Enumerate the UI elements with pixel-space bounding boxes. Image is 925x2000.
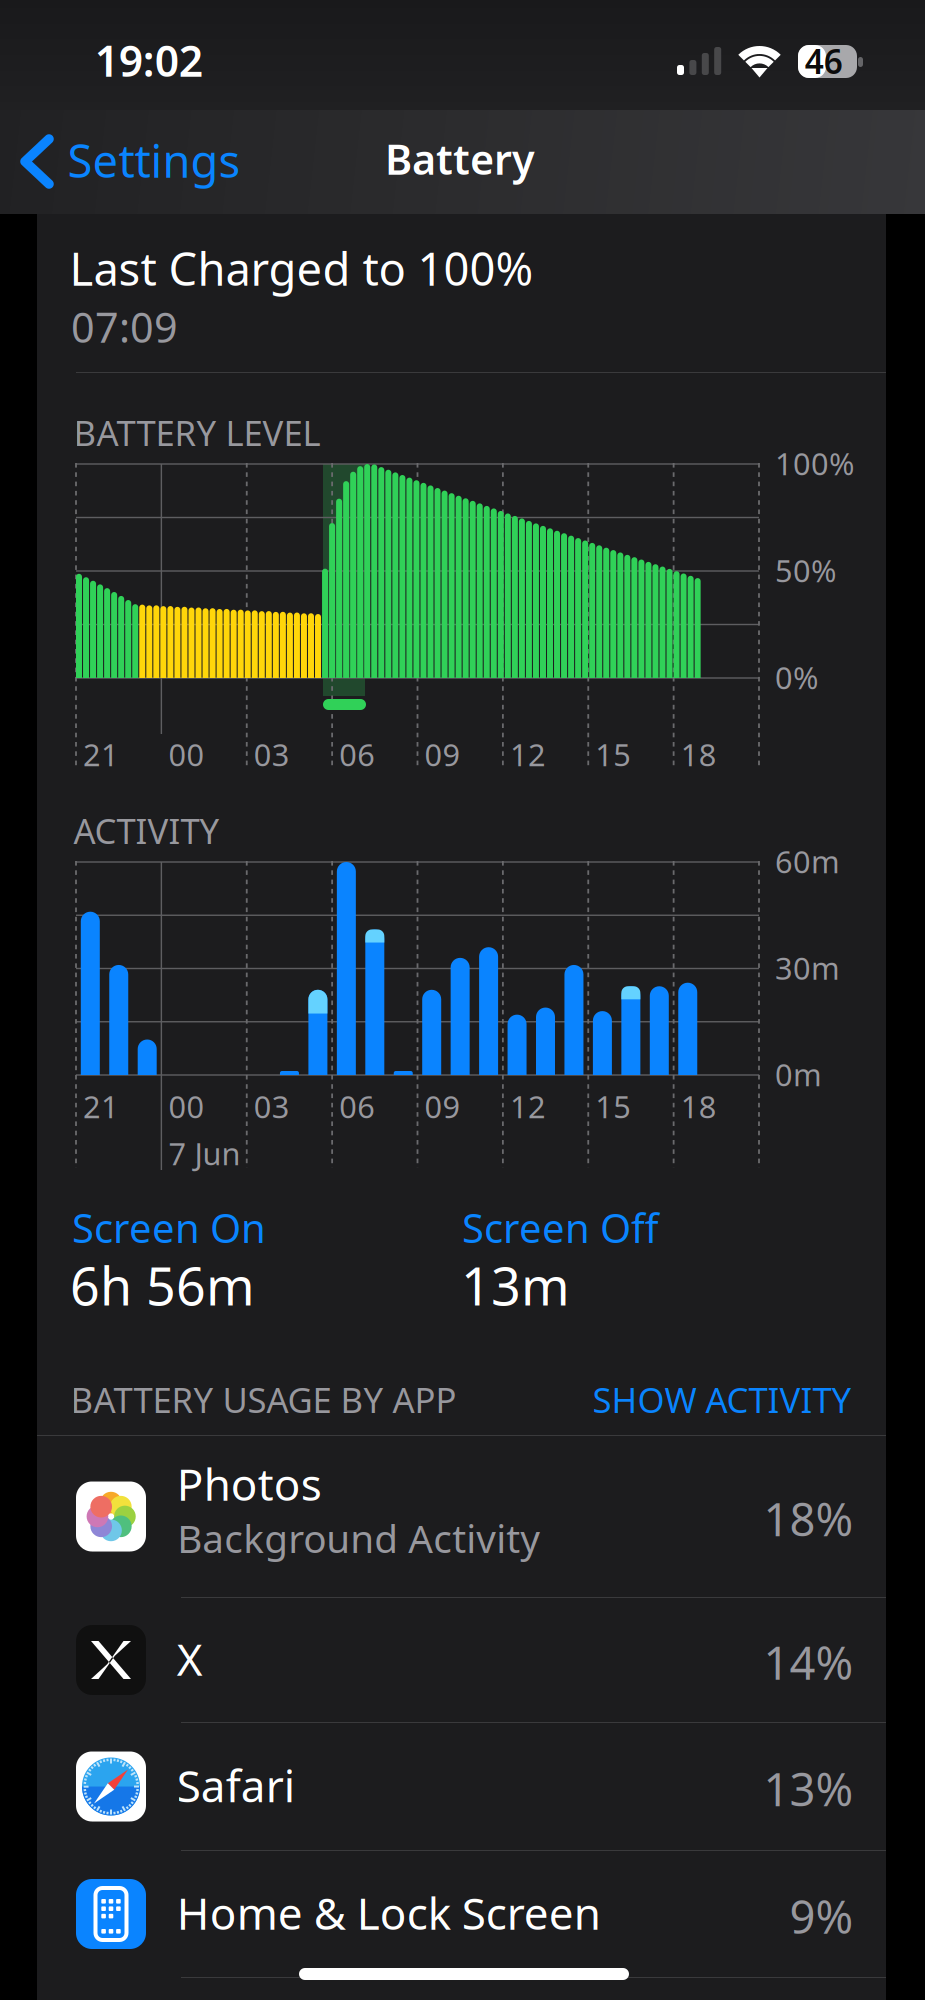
staticText: 15	[595, 1086, 631, 1127]
staticText: 19:02	[95, 32, 203, 89]
staticText: 14%	[763, 1632, 853, 1692]
staticText: 18	[681, 1086, 717, 1127]
staticText: Screen On	[72, 1201, 266, 1254]
staticText: 00	[168, 734, 204, 775]
staticText: 03	[254, 1086, 290, 1127]
staticText: 50%	[775, 550, 836, 591]
staticText: Battery	[385, 131, 535, 186]
staticText: Background Activity	[177, 1512, 540, 1563]
staticText: Photos	[177, 1454, 322, 1513]
staticText: 12	[510, 734, 546, 775]
staticText: Screen Off	[462, 1201, 659, 1254]
staticText: 0%	[775, 657, 818, 698]
staticText: 06	[339, 1086, 375, 1127]
staticText: 00	[168, 1086, 204, 1127]
staticText: BATTERY USAGE BY APP	[71, 1377, 457, 1423]
button[interactable]: Home & Lock Screen	[37, 1851, 886, 1977]
staticText: 30m	[775, 947, 840, 988]
staticText: 06	[339, 734, 375, 775]
staticText: 13m	[461, 1251, 570, 1320]
staticText: 9%	[789, 1886, 853, 1946]
staticText: 21	[83, 734, 119, 775]
staticText: BATTERY LEVEL	[74, 410, 321, 456]
staticText: 100%	[775, 443, 854, 484]
staticText: 18	[681, 734, 717, 775]
staticText: Settings	[68, 130, 241, 190]
staticText: 15	[595, 734, 631, 775]
staticText: 09	[424, 1086, 460, 1127]
button[interactable]: Safari	[37, 1723, 886, 1850]
button[interactable]: Settings	[0, 110, 260, 214]
staticText: X	[177, 1629, 203, 1688]
staticText: SHOW ACTIVITY	[593, 1377, 852, 1423]
staticText: 18%	[763, 1488, 853, 1549]
staticText: 6h 56m	[70, 1251, 255, 1320]
button[interactable]: SHOW ACTIVITY	[575, 1371, 875, 1427]
staticText: Safari	[177, 1756, 295, 1814]
staticText: 09	[424, 734, 460, 775]
staticText: 0m	[775, 1054, 822, 1095]
staticText: 46	[805, 39, 843, 83]
button[interactable]: Photos	[37, 1436, 886, 1597]
staticText: 13%	[763, 1758, 853, 1819]
staticText: 21	[83, 1086, 119, 1127]
staticText: 7 Jun	[168, 1133, 240, 1174]
staticText: 12	[510, 1086, 546, 1127]
staticText: Home & Lock Screen	[177, 1883, 601, 1942]
staticText: 07:09	[71, 299, 178, 354]
staticText: Last Charged to 100%	[70, 238, 534, 298]
staticText: ACTIVITY	[74, 808, 220, 854]
staticText: 03	[254, 734, 290, 775]
button[interactable]: X	[37, 1598, 886, 1722]
staticText: 60m	[775, 841, 840, 882]
